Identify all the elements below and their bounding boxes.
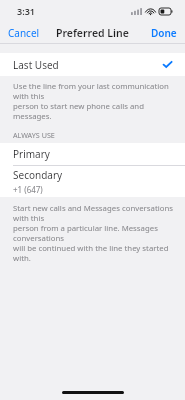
button[interactable]: Secondary [0,166,185,197]
staticText: Use the line from your last communicatio… [13,81,175,121]
button[interactable]: Cancel [0,23,48,43]
button[interactable]: Primary [0,143,185,165]
button[interactable]: Last Used [0,53,185,76]
staticText: +1 (647) [13,184,43,195]
staticText: Cancel [8,26,40,40]
staticText: Primary [13,147,50,161]
staticText: 3:31 [17,5,35,17]
staticText: Preferred Line [56,26,129,40]
staticText: Start new calls and Messages conversatio… [13,203,175,263]
other: Home indicator [62,391,124,394]
staticText: ALWAYS USE [13,130,185,140]
staticText: Done [151,26,177,40]
staticText: Last Used [13,58,163,72]
button[interactable]: Done [143,23,185,43]
staticText: Secondary [13,168,63,182]
